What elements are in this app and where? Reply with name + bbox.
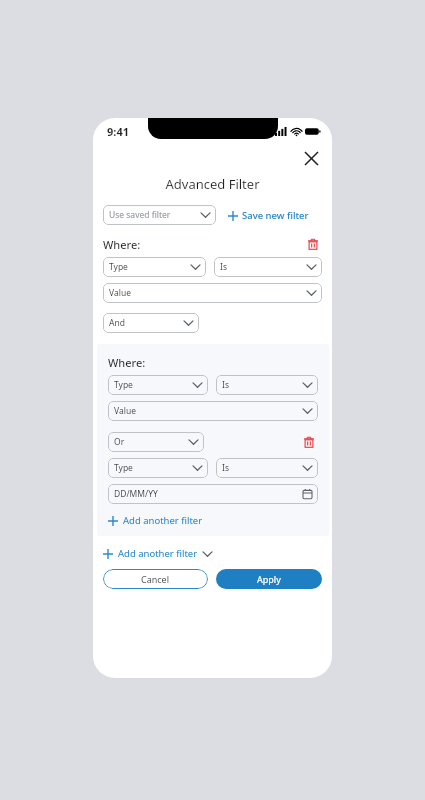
button[interactable]: Type [103,257,206,277]
button[interactable]: And [103,313,199,333]
staticText: Advanced Filter [165,175,260,193]
button[interactable]: Add another filter [108,514,203,527]
staticText: DD/MM/YY [114,488,158,500]
staticText: Value [109,287,131,299]
staticText: Is [222,379,229,391]
staticText: Type [109,261,128,273]
button[interactable]: Value [108,401,318,421]
button[interactable]: Cancel [103,569,208,589]
button[interactable]: Delete filter [304,235,322,253]
button[interactable]: Save new filter [228,209,309,222]
button[interactable]: Value [103,283,322,303]
staticText: Use saved filter [109,209,171,221]
button[interactable]: Apply [216,569,322,589]
staticText: Is [220,261,227,273]
staticText: Apply [257,573,281,585]
button[interactable]: Is [216,375,318,395]
button[interactable]: Is [216,458,318,478]
button[interactable]: Add another filter [103,547,212,560]
button[interactable]: Close [298,145,324,171]
staticText: Add another filter [118,547,198,560]
staticText: Type [114,379,133,391]
button[interactable]: Use saved filter [103,205,216,225]
button[interactable]: Delete filter [300,433,318,451]
staticText: Type [114,462,133,474]
button[interactable]: Type [108,375,208,395]
button[interactable]: Or [108,432,204,452]
button[interactable]: Type [108,458,208,478]
staticText: Save new filter [242,209,309,222]
staticText: Is [222,462,229,474]
staticText: Or [114,436,125,448]
staticText: Where: [108,355,146,370]
staticText: Cancel [141,573,170,585]
staticText: And [109,317,125,329]
staticText: Value [114,405,136,417]
staticText: Where: [103,237,141,252]
button[interactable]: Is [214,257,322,277]
staticText: Add another filter [123,514,203,527]
button[interactable]: DD/MM/YY [108,484,318,504]
staticText: 9:41 [107,124,129,139]
